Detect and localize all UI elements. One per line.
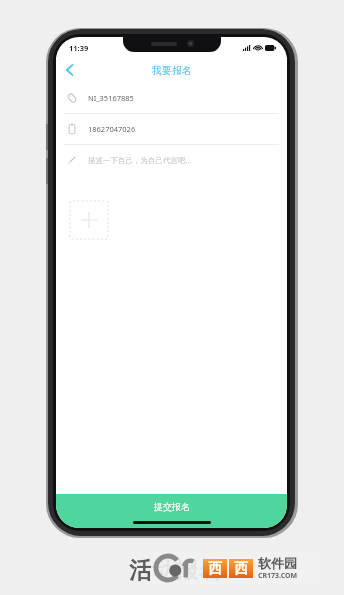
staticText: 11:39 bbox=[69, 43, 89, 53]
button[interactable]: 18627047026 bbox=[56, 114, 287, 144]
button[interactable]: 提交报名 bbox=[56, 494, 287, 528]
staticText: 西 bbox=[234, 560, 248, 578]
button[interactable]: Back bbox=[56, 57, 82, 83]
staticText: 软件园 bbox=[258, 555, 297, 571]
staticText: NI_35167885 bbox=[88, 93, 134, 103]
button[interactable]: Add photo bbox=[70, 201, 108, 239]
staticText: 描述一下自己，为自己代言吧... bbox=[88, 155, 192, 165]
button[interactable]: 描述一下自己，为自己代言吧... bbox=[56, 145, 287, 175]
staticText: 活动报名 bbox=[129, 556, 221, 585]
staticText: CR173.COM bbox=[258, 571, 298, 581]
staticText: 18627047026 bbox=[88, 124, 136, 134]
button[interactable]: NI_35167885 bbox=[56, 83, 287, 113]
staticText: 西 bbox=[208, 560, 222, 578]
staticText: 我要报名 bbox=[152, 64, 192, 77]
staticText: 提交报名 bbox=[154, 501, 190, 512]
